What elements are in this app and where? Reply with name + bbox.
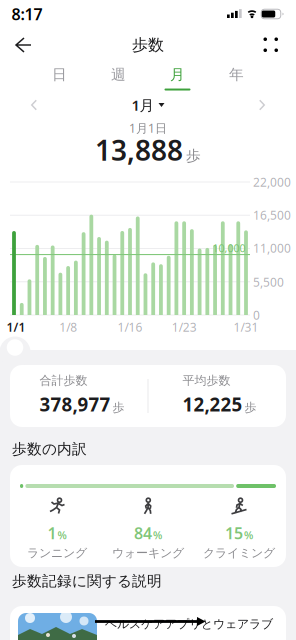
button[interactable]: 年	[207, 65, 266, 90]
staticText: 月	[170, 65, 185, 83]
staticText: 1	[47, 522, 56, 544]
button[interactable]: ヘルスケアアプリとウェアラブ	[10, 606, 286, 640]
staticText: ウォーキング	[112, 546, 184, 560]
staticText: 0	[253, 307, 260, 323]
staticText: 10,000	[212, 241, 245, 255]
staticText: ヘルスケアアプリとウェアラブ	[105, 617, 273, 631]
staticText: 5,500	[253, 274, 284, 290]
staticText: 15	[225, 522, 243, 544]
staticText: 日	[52, 65, 67, 83]
button[interactable]: Back	[4, 28, 42, 62]
staticText: 12,225	[182, 392, 242, 417]
button[interactable]: Menu	[255, 29, 287, 61]
staticText: 歩	[112, 400, 124, 415]
staticText: 1/31	[233, 319, 258, 335]
staticText: 11,000	[253, 240, 291, 256]
staticText: 1月	[131, 95, 154, 115]
staticText: 週	[111, 65, 126, 83]
staticText: 歩	[244, 400, 256, 415]
staticText: 8:17	[11, 3, 42, 25]
staticText: ランニング	[27, 546, 87, 560]
staticText: 378,977	[39, 392, 110, 417]
staticText: %	[244, 528, 253, 542]
staticText: 84	[134, 522, 152, 544]
button[interactable]: 週	[89, 65, 148, 90]
staticText: 1月1日	[129, 120, 167, 136]
button[interactable]: 1月	[127, 91, 168, 119]
staticText: 平均歩数	[182, 373, 230, 388]
staticText: 合計歩数	[39, 373, 87, 388]
staticText: 歩	[186, 147, 201, 165]
staticText: 年	[229, 65, 244, 83]
staticText: 22,000	[253, 174, 291, 190]
staticText: 歩数	[132, 35, 164, 55]
button[interactable]: 次の月	[251, 92, 273, 118]
staticText: %	[153, 528, 162, 542]
button[interactable]: 月	[148, 65, 207, 90]
staticText: 1/23	[172, 319, 197, 335]
staticText: 歩数記録に関する説明	[12, 572, 162, 590]
staticText: %	[57, 528, 66, 542]
button[interactable]: 日	[30, 65, 89, 90]
staticText: 16,500	[253, 207, 291, 223]
staticText: 1/16	[117, 319, 142, 335]
staticText: 1/1	[6, 319, 25, 335]
staticText: クライミング	[203, 546, 275, 560]
staticText: 13,888	[95, 131, 183, 169]
staticText: 1/8	[59, 319, 77, 335]
button[interactable]: 前の月	[23, 92, 45, 118]
staticText: 歩数の内訳	[12, 440, 87, 458]
